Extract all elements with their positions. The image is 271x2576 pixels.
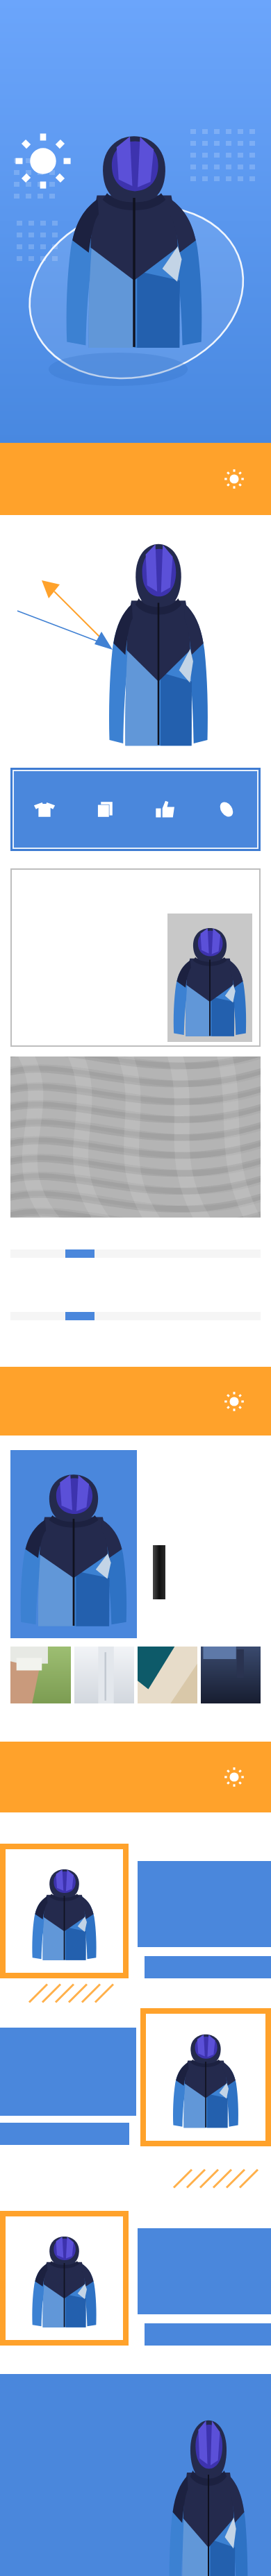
button[interactable]	[10, 1450, 137, 1638]
button[interactable]	[10, 868, 261, 1047]
button[interactable]: Apparel	[14, 771, 74, 848]
button[interactable]: Like	[135, 771, 196, 848]
button[interactable]	[0, 2008, 271, 2146]
button[interactable]	[74, 1647, 134, 1703]
button[interactable]: Brightness	[224, 1391, 245, 1412]
button[interactable]	[0, 2211, 271, 2346]
button[interactable]: Brightness	[224, 469, 245, 489]
button[interactable]	[0, 0, 271, 443]
button[interactable]: Color	[196, 771, 257, 848]
button[interactable]	[10, 1312, 261, 1320]
button[interactable]	[138, 1647, 197, 1703]
button[interactable]	[201, 1647, 261, 1703]
button[interactable]: Copy	[74, 771, 135, 848]
button[interactable]	[0, 1844, 271, 1978]
button[interactable]	[10, 1249, 261, 1258]
button[interactable]	[10, 1647, 71, 1703]
button[interactable]: Brightness	[224, 1767, 245, 1787]
